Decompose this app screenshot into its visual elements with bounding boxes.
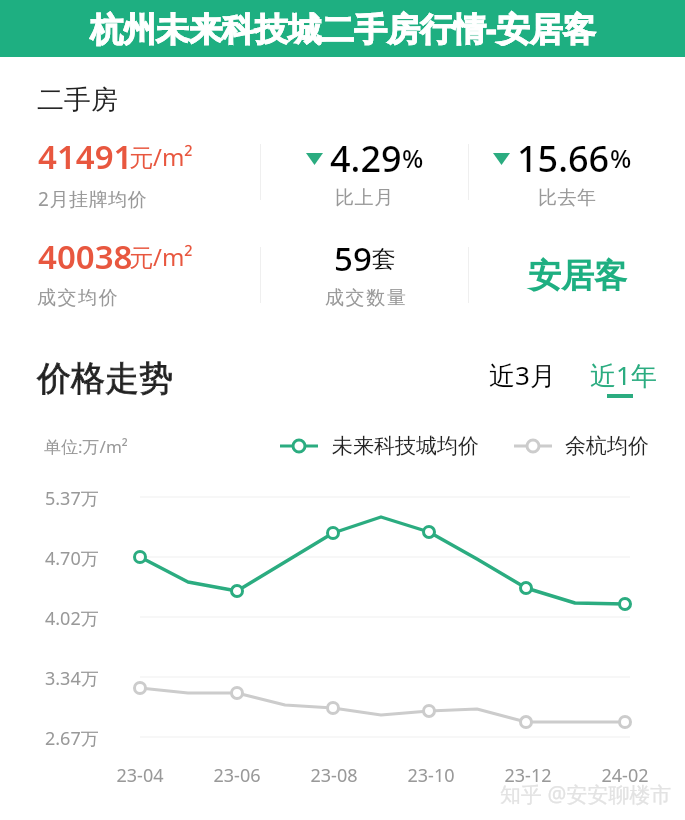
staticText: 套 bbox=[372, 244, 396, 274]
staticText: 40038 bbox=[38, 234, 133, 279]
staticText: 近1年 bbox=[590, 357, 657, 393]
staticText: 2.67万 bbox=[45, 726, 99, 751]
staticText: 单位:万/m² bbox=[44, 435, 128, 458]
staticText: % bbox=[402, 141, 424, 175]
staticText: 余杭均价 bbox=[565, 433, 649, 459]
staticText: 杭州未来科技城二手房行情-安居客 bbox=[90, 6, 596, 51]
staticText: 成交均价 bbox=[37, 286, 120, 310]
staticText: 近3月 bbox=[489, 357, 556, 393]
staticText: % bbox=[610, 141, 632, 175]
staticText: 4.29 bbox=[330, 134, 402, 183]
staticText: 未来科技城均价 bbox=[332, 433, 479, 459]
staticText: 23-06 bbox=[205, 763, 269, 788]
staticText: 2月挂牌均价 bbox=[38, 186, 148, 212]
staticText: 安居客 bbox=[528, 255, 627, 297]
staticText: 成交数量 bbox=[325, 286, 408, 310]
staticText: 比上月 bbox=[335, 186, 394, 210]
staticText: 23-08 bbox=[302, 763, 366, 788]
staticText: 23-12 bbox=[496, 763, 560, 788]
staticText: 4.02万 bbox=[45, 606, 99, 631]
staticText: 杭州未来科技城二手房行情-安居客 bbox=[90, 6, 596, 51]
staticText: 4.70万 bbox=[45, 546, 99, 571]
staticText: 5.37万 bbox=[45, 486, 99, 511]
staticText: 15.66 bbox=[517, 134, 610, 183]
staticText: 59 bbox=[334, 236, 372, 281]
staticText: 41491 bbox=[38, 134, 133, 179]
staticText: 23-10 bbox=[399, 763, 463, 788]
staticText: 23-04 bbox=[108, 763, 172, 788]
staticText: 元/m² bbox=[129, 140, 193, 173]
staticText: 3.34万 bbox=[45, 666, 99, 691]
staticText: 24-02 bbox=[593, 763, 657, 788]
staticText: 比去年 bbox=[538, 186, 597, 210]
staticText: 二手房 bbox=[37, 83, 118, 117]
button[interactable]: 近1年 bbox=[590, 357, 657, 393]
staticText: 价格走势 bbox=[37, 357, 173, 400]
staticText: 价格走势 bbox=[37, 357, 173, 400]
button[interactable]: 近3月 bbox=[489, 357, 556, 393]
staticText: 知乎 @安安聊楼市 bbox=[500, 780, 672, 809]
staticText: 元/m² bbox=[129, 240, 193, 273]
